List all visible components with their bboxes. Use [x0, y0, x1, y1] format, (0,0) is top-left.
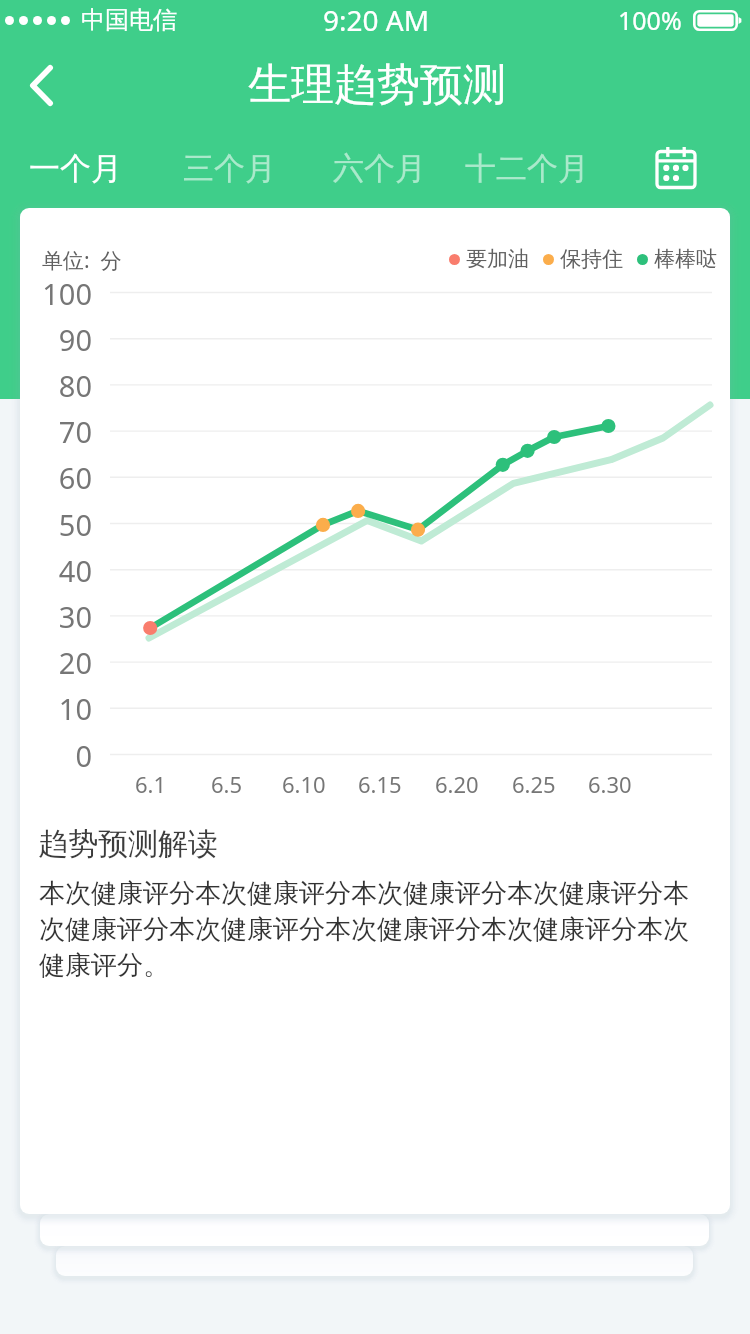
staticText: 六个月: [333, 149, 426, 188]
staticText: 6.5: [211, 769, 243, 799]
staticText: 生理趋势预测: [248, 58, 506, 112]
staticText: 6.10: [282, 769, 326, 799]
staticText: 6.30: [588, 769, 632, 799]
staticText: 三个月: [183, 149, 276, 188]
button[interactable]: 十二个月: [452, 128, 602, 208]
staticText: 90: [58, 320, 92, 359]
staticText: 50: [58, 505, 92, 544]
staticText: 十二个月: [465, 149, 589, 188]
button[interactable]: 三个月: [154, 128, 304, 208]
staticText: 趋势预测解读: [38, 825, 218, 863]
staticText: 6.25: [512, 769, 556, 799]
staticText: 100%: [618, 3, 682, 37]
staticText: 80: [58, 366, 92, 405]
staticText: 单位: 分: [42, 246, 122, 275]
staticText: 要加油: [466, 246, 529, 272]
staticText: 20: [58, 643, 92, 682]
staticText: 6.15: [358, 769, 402, 799]
button[interactable]: Calendar: [620, 130, 750, 210]
staticText: 60: [58, 458, 92, 497]
staticText: 9:20 AM: [323, 1, 430, 39]
staticText: 一个月: [29, 149, 122, 188]
staticText: 棒棒哒: [654, 246, 717, 272]
button[interactable]: 一个月: [0, 128, 150, 208]
button[interactable]: Back: [0, 40, 82, 130]
staticText: 30: [58, 597, 92, 636]
staticText: 6.20: [435, 769, 479, 799]
staticText: 100: [42, 274, 92, 313]
staticText: 本次健康评分本次健康评分本次健康评分本次健康评分本次健康评分本次健康评分本次健康…: [39, 877, 697, 981]
staticText: 10: [58, 689, 92, 728]
staticText: 70: [58, 412, 92, 451]
staticText: 中国电信: [81, 5, 177, 35]
staticText: 0: [75, 736, 92, 775]
staticText: 40: [58, 551, 92, 590]
staticText: 保持住: [560, 246, 623, 272]
staticText: 6.1: [135, 769, 167, 799]
button[interactable]: 六个月: [304, 128, 454, 208]
